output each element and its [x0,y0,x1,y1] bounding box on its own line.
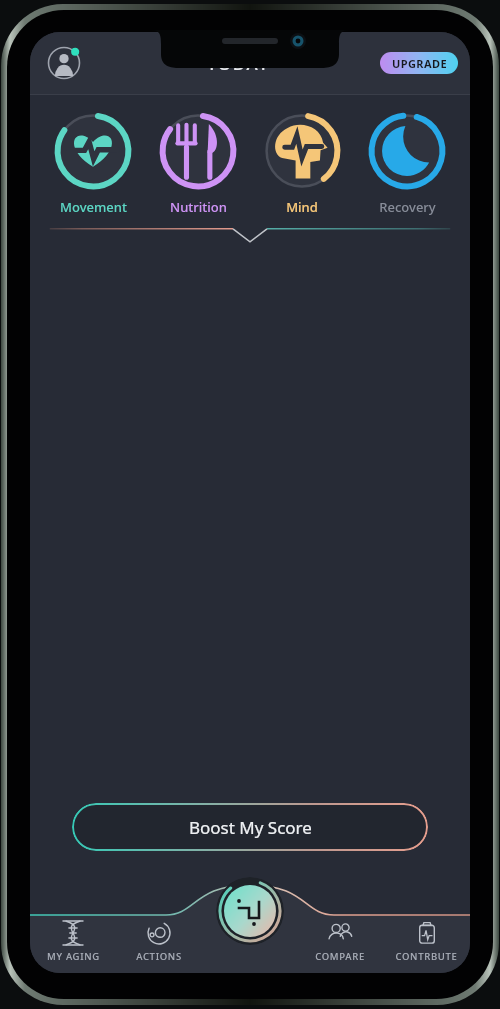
button[interactable]: ACTIONS [116,918,202,965]
staticText: ACTIONS [136,950,182,963]
staticText: TODAY [207,52,270,75]
staticText: UPGRADE [392,56,447,71]
button[interactable]: Recovery [359,109,455,218]
staticText: CONTRBUTE [395,950,458,963]
button[interactable]: TODAY [207,52,293,75]
button[interactable]: Home [216,877,284,945]
button[interactable]: Profile [44,43,84,83]
button[interactable]: Movement [45,109,141,218]
button[interactable]: Boost My Score [72,803,428,851]
staticText: Recovery [379,198,436,216]
button[interactable]: Mind [254,109,350,218]
button[interactable]: UPGRADE [380,52,458,74]
staticText: Movement [60,198,127,216]
staticText: MY AGING [47,950,100,963]
button[interactable]: COMPARE [296,918,383,965]
button[interactable]: MY AGING [30,918,116,965]
button[interactable]: Nutrition [150,109,246,218]
staticText: COMPARE [315,950,365,963]
staticText: Boost My Score [189,816,312,839]
staticText: Mind [286,198,318,216]
staticText: Nutrition [170,198,227,216]
button[interactable]: CONTRBUTE [383,918,470,965]
